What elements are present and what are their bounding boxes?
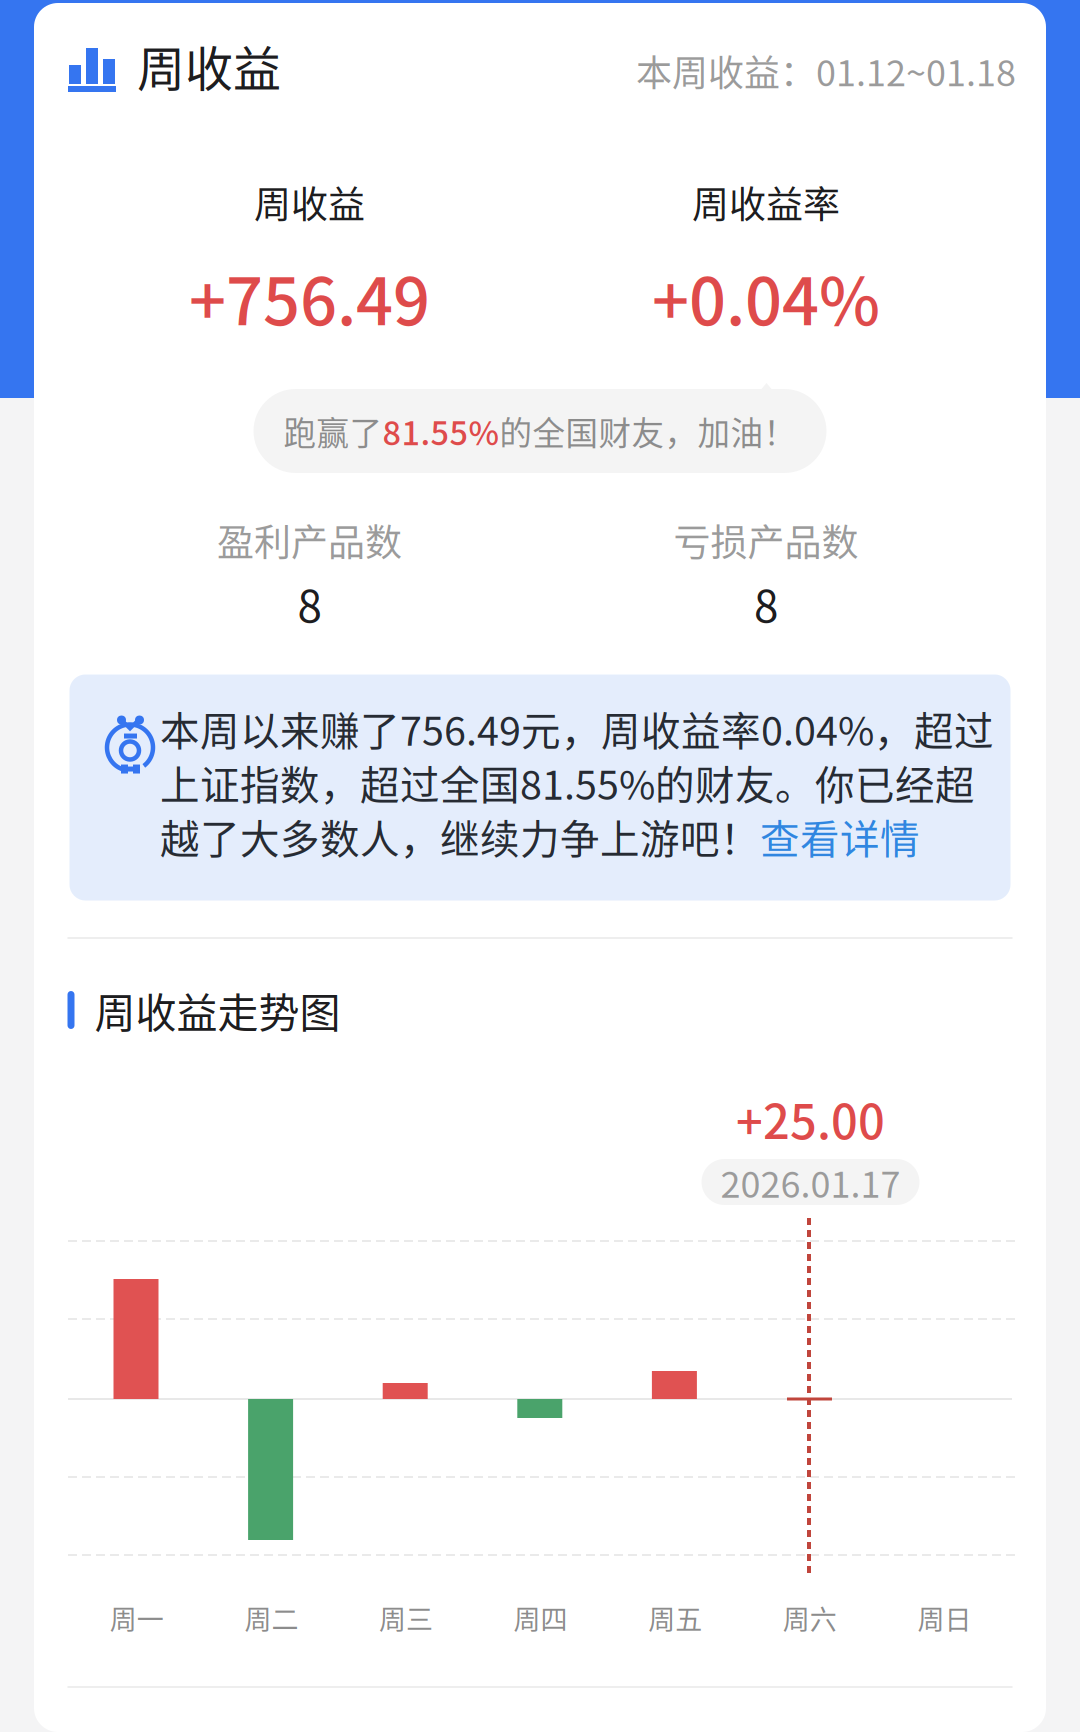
staticText: 周收益率 — [692, 175, 840, 229]
staticText: 周收益 — [137, 31, 281, 100]
staticText: 8 — [297, 571, 321, 635]
staticText: 周日 — [917, 1598, 971, 1638]
staticText: 越了大多数人，继续力争上游吧！ — [160, 808, 760, 865]
staticText: +25.00 — [736, 1084, 885, 1153]
staticText: 2026.01.17 — [720, 1156, 900, 1208]
staticText: 周六 — [783, 1598, 837, 1638]
button[interactable]: 本周以来赚了756.49元，周收益率0.04%，超过 — [69, 674, 1010, 900]
staticText: 亏损产品数 — [673, 513, 858, 567]
staticText: 周三 — [379, 1598, 433, 1638]
staticText: 跑赢了 — [283, 407, 382, 455]
staticText: 周一 — [110, 1598, 164, 1638]
staticText: 查看详情 — [760, 808, 920, 865]
staticText: 周收益走势图 — [94, 980, 340, 1040]
staticText: 周四 — [514, 1598, 568, 1638]
staticText: 上证指数，超过全国81.55%的财友。你已经超 — [160, 754, 975, 811]
staticText: 盈利产品数 — [217, 513, 402, 567]
staticText: 8 — [754, 571, 778, 635]
staticText: 周二 — [244, 1598, 298, 1638]
staticText: 的全国财友，加油！ — [499, 407, 796, 455]
staticText: 周收益 — [254, 175, 365, 229]
staticText: +0.04% — [652, 250, 880, 344]
staticText: 81.55% — [382, 407, 499, 455]
staticText: 本周以来赚了756.49元，周收益率0.04%，超过 — [160, 700, 994, 757]
staticText: +756.49 — [189, 250, 430, 344]
staticText: 周五 — [648, 1598, 702, 1638]
staticText: 本周收益：01.12~01.18 — [636, 44, 1016, 96]
